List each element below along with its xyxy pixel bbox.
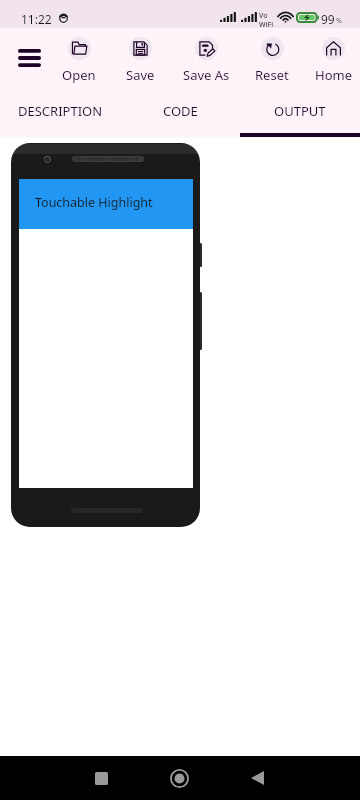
staticText: 99 [321, 11, 335, 27]
staticText: Touchable Highlight [35, 194, 153, 211]
staticText: Open [62, 66, 96, 84]
staticText: Reset [255, 66, 289, 84]
button[interactable]: Menu [7, 36, 51, 80]
staticText: Save [126, 66, 155, 84]
staticText: DESCRIPTION [18, 102, 103, 120]
staticText: Home [315, 66, 352, 84]
staticText: Vo [259, 11, 268, 21]
staticText: % [336, 16, 342, 26]
button[interactable]: Open [51, 37, 107, 84]
button[interactable]: Home [305, 37, 360, 84]
button[interactable]: Home [157, 756, 201, 800]
staticText: CODE [163, 102, 198, 120]
staticText: WiFi [259, 20, 274, 30]
staticText: 11:22 [21, 11, 52, 27]
staticText: Save As [183, 66, 230, 84]
button[interactable]: DESCRIPTION [0, 92, 120, 129]
button[interactable]: Reset [244, 37, 300, 84]
button[interactable]: Back [235, 756, 279, 800]
button[interactable]: Save [112, 37, 168, 84]
button[interactable]: Save As [178, 37, 234, 84]
button[interactable]: Recents [79, 756, 123, 800]
button[interactable]: OUTPUT [240, 92, 360, 129]
staticText: OUTPUT [274, 102, 326, 120]
button[interactable]: CODE [120, 92, 240, 129]
